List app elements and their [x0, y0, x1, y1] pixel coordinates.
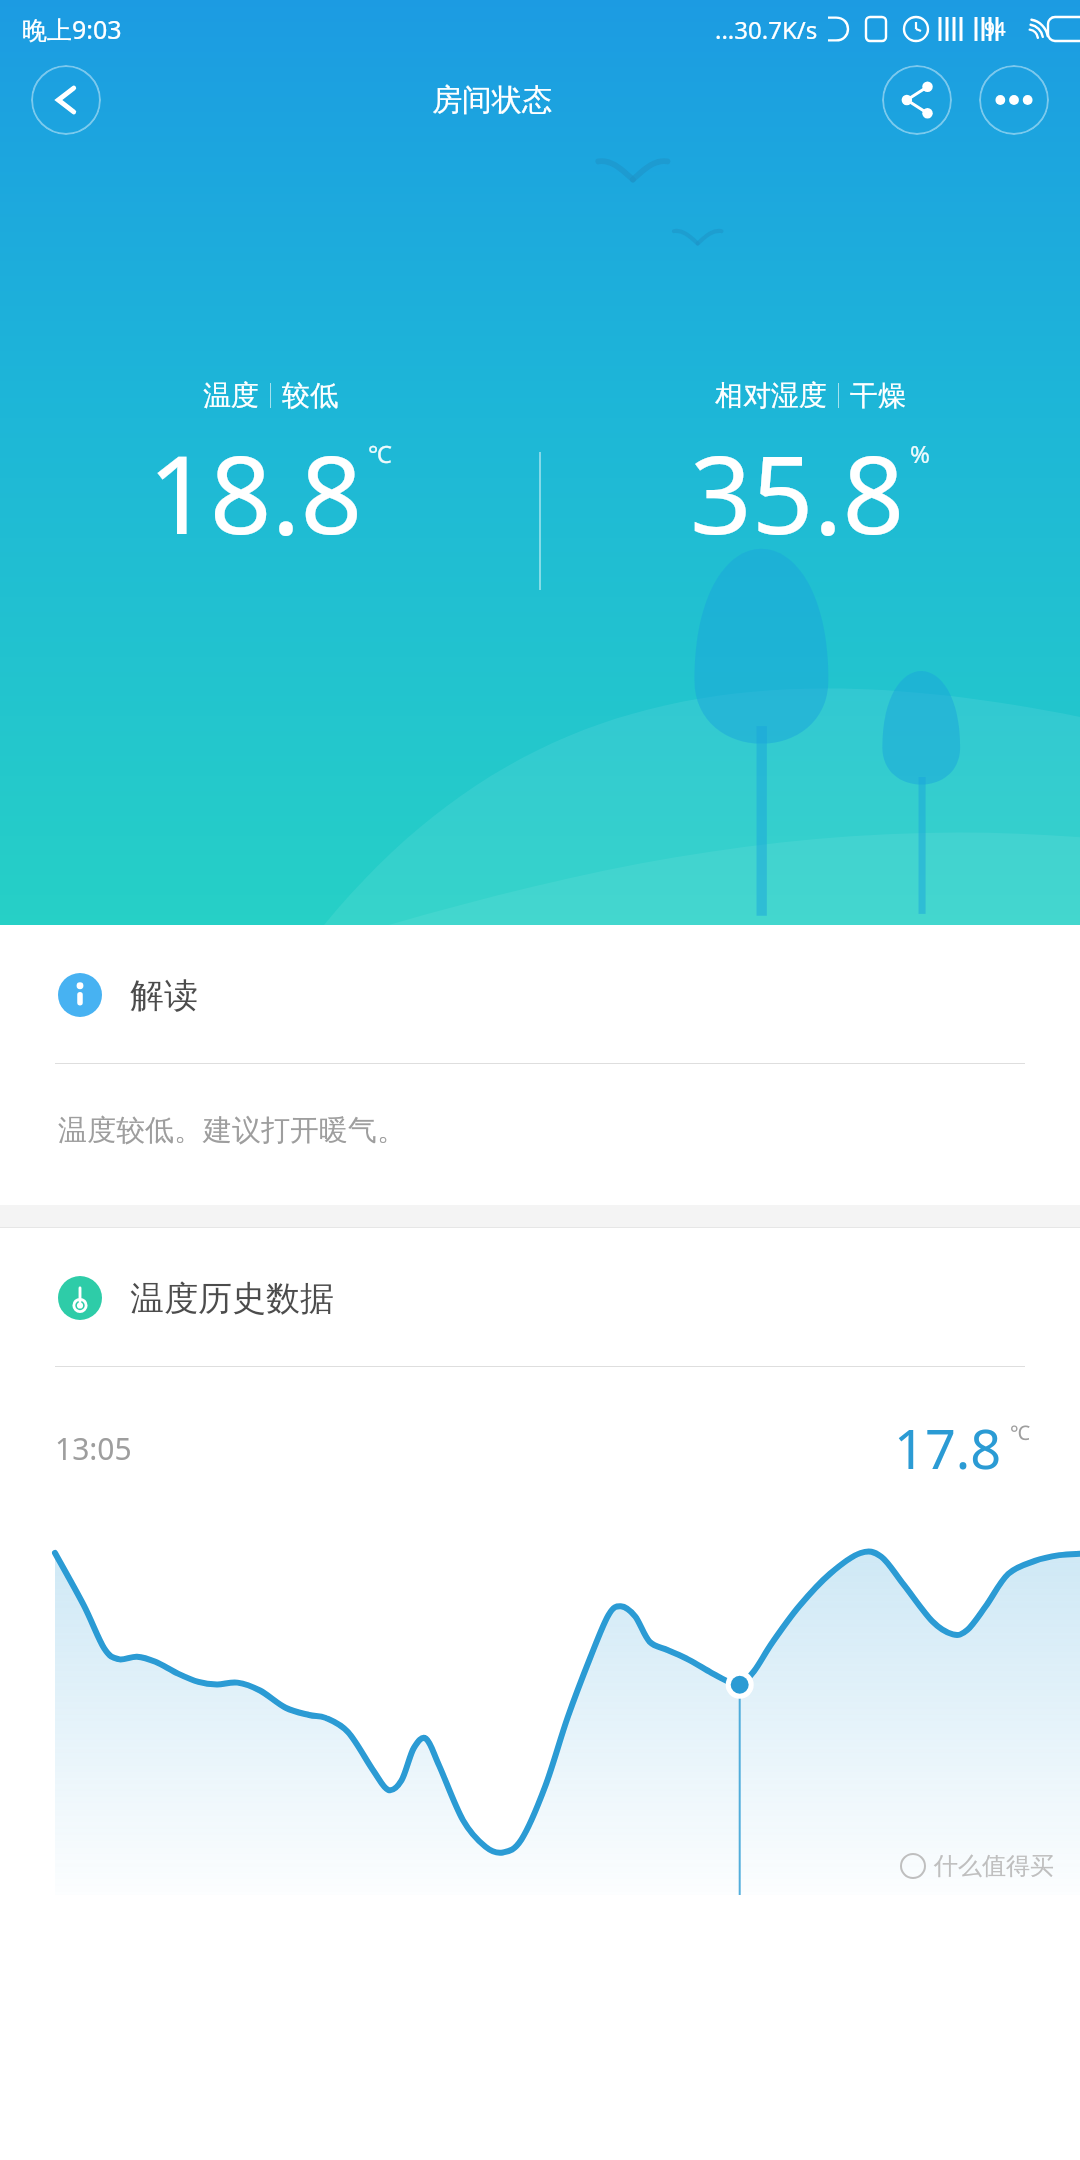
- button[interactable]: 什么值得买: [0, 1535, 1080, 1895]
- staticText: 温度较低。建议打开暖气。: [58, 1112, 406, 1149]
- staticText: 13:05: [55, 1428, 132, 1469]
- staticText: 房间状态: [432, 81, 552, 119]
- button[interactable]: More options: [979, 65, 1049, 135]
- staticText: ℃: [368, 437, 392, 470]
- button[interactable]: 温度历史数据: [0, 1228, 1080, 1366]
- button[interactable]: Share: [882, 65, 952, 135]
- button[interactable]: Back: [31, 65, 101, 135]
- staticText: 温度: [203, 378, 259, 413]
- staticText: 较低: [282, 378, 338, 413]
- staticText: 18.8: [148, 419, 363, 566]
- staticText: 温度历史数据: [130, 1277, 334, 1320]
- staticText: 干燥: [850, 378, 906, 413]
- button[interactable]: 解读: [0, 925, 1080, 1063]
- staticText: %: [910, 437, 930, 470]
- staticText: 35.8: [690, 419, 905, 566]
- staticText: ℃: [1010, 1419, 1030, 1446]
- staticText: 94: [984, 16, 1006, 42]
- staticText: 相对湿度: [715, 378, 827, 413]
- staticText: 什么值得买: [934, 1851, 1054, 1881]
- staticText: 17.8: [894, 1411, 1002, 1485]
- staticText: 解读: [130, 974, 198, 1017]
- staticText: 晚上9:03: [22, 12, 122, 46]
- staticText: ...30.7K/s: [715, 13, 818, 46]
